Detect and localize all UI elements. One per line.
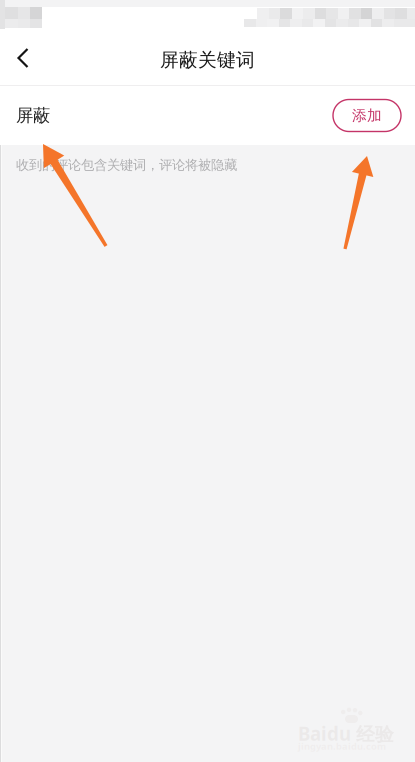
staticText: 收到的评论包含关键词，评论将被隐藏: [16, 157, 237, 173]
staticText: Baidu 经验: [298, 721, 394, 746]
button[interactable]: 屏蔽: [0, 86, 303, 145]
staticText: 屏蔽关键词: [160, 48, 255, 71]
staticText: 屏蔽: [16, 105, 50, 126]
button[interactable]: Back: [0, 35, 46, 85]
staticText: jingyan.baidu.com: [298, 740, 386, 752]
staticText: 添加: [352, 106, 382, 124]
button[interactable]: 添加: [333, 99, 401, 131]
